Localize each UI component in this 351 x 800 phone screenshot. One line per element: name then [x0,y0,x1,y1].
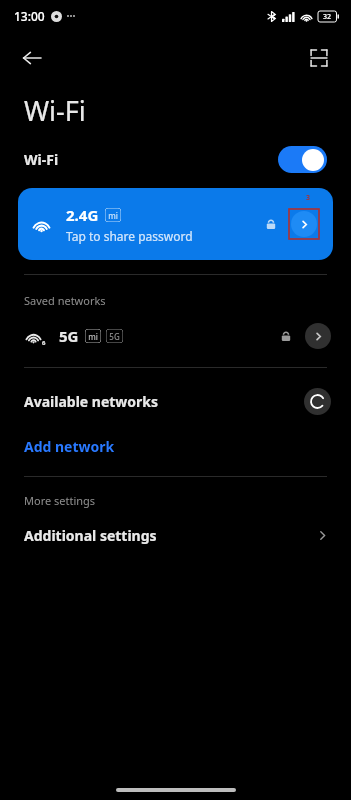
staticText: 6 [42,339,46,347]
staticText: Tap to share password [66,228,193,244]
staticText: 3 [306,193,311,203]
staticText: 5G [109,331,120,342]
staticText: mi [88,331,98,342]
staticText: 5G [59,326,79,346]
other: Scanning [304,388,331,415]
button[interactable]: Network details [291,211,317,237]
staticText: Wi-Fi [24,92,86,129]
button[interactable]: Available networks [0,378,351,424]
button[interactable]: Add network [0,424,351,468]
button[interactable]: Additional settings [0,513,351,557]
button[interactable]: 6 [0,313,351,359]
staticText: More settings [24,493,96,508]
button[interactable]: Scan QR code [299,38,339,78]
button[interactable]: Network details [305,323,331,349]
staticText: Additional settings [24,526,157,545]
button[interactable]: 2.4G [18,188,333,260]
staticText: 2.4G [66,205,99,225]
staticText: Wi-Fi [24,150,59,169]
staticText: Saved networks [24,293,106,308]
staticText: Available networks [24,392,159,411]
staticText: 32 [323,12,332,22]
staticText: mi [108,210,118,221]
staticText: 13:00 [14,8,45,24]
button[interactable]: Wi-Fi [0,136,351,182]
button[interactable]: Back [12,38,52,78]
staticText: Add network [24,437,115,456]
